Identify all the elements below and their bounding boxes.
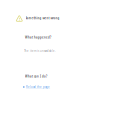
button[interactable]: Reload the page [23, 85, 50, 89]
staticText: The item is unavailable. [24, 49, 56, 53]
staticText: Reload the page [26, 85, 50, 89]
staticText: What can I do? [25, 75, 47, 78]
staticText: Something went wrong [26, 16, 60, 20]
staticText: What happened? [25, 36, 51, 39]
